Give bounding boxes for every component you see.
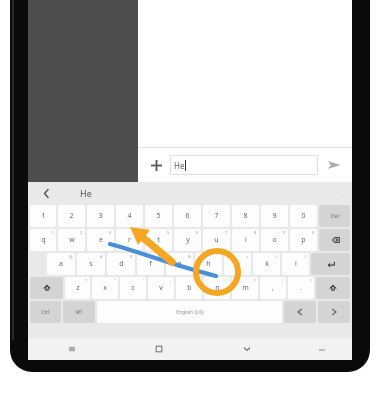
button[interactable]: Move cursor right	[318, 301, 350, 323]
button[interactable]: 4	[116, 205, 143, 227]
staticText: Del	[331, 213, 339, 220]
button[interactable]: 2	[58, 205, 85, 227]
staticText: %	[158, 254, 162, 259]
button[interactable]: Move cursor left	[284, 301, 316, 323]
staticText: He	[174, 160, 185, 171]
button[interactable]: 3	[87, 205, 114, 227]
button[interactable]: English (US)	[97, 301, 282, 323]
button[interactable]: d	[107, 253, 135, 275]
staticText: 9	[283, 230, 286, 235]
button[interactable]: e	[87, 229, 114, 251]
button[interactable]: He	[80, 187, 92, 199]
staticText: 3	[109, 230, 112, 235]
staticText: -	[218, 254, 220, 259]
button[interactable]: j	[224, 253, 251, 275]
staticText: 5	[156, 211, 161, 221]
button[interactable]: t	[145, 229, 172, 251]
button[interactable]: · · ·	[332, 188, 342, 198]
button[interactable]: i	[232, 229, 259, 251]
staticText: s	[89, 259, 93, 269]
button[interactable]: w	[58, 229, 85, 251]
staticText: !	[226, 278, 228, 283]
button[interactable]: f	[137, 253, 164, 275]
button[interactable]: c	[120, 277, 146, 299]
button[interactable]: g	[166, 253, 193, 275]
button[interactable]: Ctrl	[30, 301, 61, 323]
button[interactable]: Collapse	[291, 338, 352, 360]
button[interactable]: u	[203, 229, 230, 251]
button[interactable]: s	[77, 253, 105, 275]
button[interactable]: x	[92, 277, 118, 299]
button[interactable]: m	[232, 277, 258, 299]
staticText: 9	[272, 211, 277, 221]
button[interactable]: Send	[324, 155, 344, 175]
button[interactable]: 9	[261, 205, 288, 227]
staticText: k	[265, 259, 269, 269]
staticText: 5	[167, 230, 170, 235]
staticText: t	[157, 235, 160, 245]
button[interactable]: o	[261, 229, 288, 251]
button[interactable]: Previous suggestion	[38, 185, 54, 201]
staticText: 8	[243, 211, 248, 221]
staticText: :	[170, 278, 172, 283]
button[interactable]: 5	[145, 205, 172, 227]
button[interactable]: !#1	[63, 301, 95, 323]
staticText: j	[237, 259, 239, 269]
staticText: g	[177, 259, 182, 269]
staticText: r	[128, 235, 131, 245]
staticText: q	[41, 235, 46, 245]
button[interactable]: He	[170, 155, 318, 175]
staticText: !#1	[75, 309, 83, 316]
button[interactable]: l	[282, 253, 309, 275]
staticText: ?	[310, 278, 312, 283]
button[interactable]: 1	[30, 205, 56, 227]
button[interactable]: Recents	[28, 338, 115, 360]
button[interactable]: r	[116, 229, 143, 251]
staticText: l	[295, 259, 297, 269]
staticText: English (US)	[176, 309, 204, 316]
staticText: .	[300, 283, 302, 293]
button[interactable]: ,	[260, 277, 286, 299]
button[interactable]: b	[176, 277, 202, 299]
staticText: x	[103, 283, 107, 293]
staticText: y	[186, 235, 190, 245]
button[interactable]: 7	[203, 205, 230, 227]
button[interactable]: 0	[290, 205, 317, 227]
button[interactable]: 8	[232, 205, 259, 227]
button[interactable]: Shift	[30, 277, 63, 299]
staticText: 1	[41, 211, 46, 221]
button[interactable]: n	[204, 277, 230, 299]
button[interactable]: z	[65, 277, 90, 299]
button[interactable]: v	[148, 277, 174, 299]
button[interactable]: q	[30, 229, 56, 251]
button[interactable]: .	[288, 277, 314, 299]
staticText: w	[69, 235, 75, 245]
button[interactable]: Enter	[311, 253, 350, 275]
button[interactable]: Shift	[316, 277, 350, 299]
staticText: *	[85, 278, 88, 283]
staticText: 7	[225, 230, 228, 235]
button[interactable]: Add attachment	[146, 155, 166, 175]
button[interactable]: a	[47, 253, 75, 275]
button[interactable]: h	[195, 253, 222, 275]
button[interactable]: Del	[319, 205, 350, 227]
button[interactable]: y	[174, 229, 201, 251]
staticText: 4	[127, 211, 132, 221]
button[interactable]: Backspace	[319, 229, 350, 251]
staticText: 6	[196, 230, 199, 235]
staticText: u	[214, 235, 219, 245]
button[interactable]: k	[253, 253, 280, 275]
staticText: o	[272, 235, 277, 245]
button[interactable]: Hide keyboard	[203, 338, 291, 360]
staticText: ,	[272, 283, 274, 293]
staticText: d	[119, 259, 124, 269]
staticText: v	[159, 283, 163, 293]
staticText: $	[130, 254, 133, 259]
button[interactable]: p	[290, 229, 317, 251]
staticText: +	[246, 254, 249, 259]
staticText: 0	[301, 211, 306, 221]
button[interactable]: 6	[174, 205, 201, 227]
staticText: a	[59, 259, 63, 269]
button[interactable]: Home	[115, 338, 203, 360]
staticText: "	[114, 278, 116, 283]
